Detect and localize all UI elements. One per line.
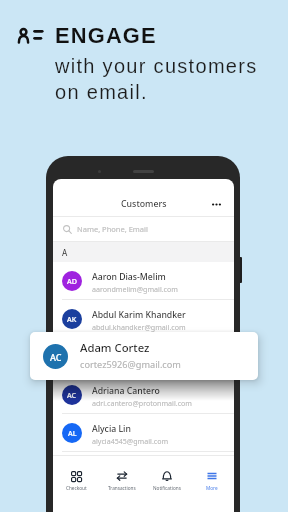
staticText: Notifications (153, 485, 181, 491)
button[interactable]: Notifications (144, 456, 189, 512)
button[interactable]: Name, Phone, Email (53, 217, 234, 241)
staticText: AC (50, 351, 62, 363)
staticText: cortez5926@gmail.com (80, 358, 181, 371)
staticText: Alycia Lin (92, 423, 131, 435)
staticText: Adriana Cantero (92, 385, 160, 397)
staticText: AB (67, 352, 77, 362)
staticText: adri.cantero@protonmail.com (92, 398, 192, 408)
staticText: Adam Baker (92, 347, 143, 359)
staticText: AC (67, 390, 77, 400)
button[interactable]: More options (205, 192, 227, 216)
button[interactable]: AC (30, 332, 258, 380)
button[interactable]: AK (53, 300, 234, 337)
staticText: Checkout (66, 485, 87, 491)
staticText: AD (67, 276, 77, 286)
staticText: aarondmelim@gmail.com (92, 284, 178, 294)
button[interactable]: AB (53, 338, 234, 375)
staticText: Transactions (108, 485, 136, 491)
button[interactable]: Transactions (99, 456, 144, 512)
staticText: Abdul Karim Khandker (92, 309, 186, 321)
staticText: Aaron Dias-Melim (92, 271, 166, 283)
staticText: abdul.khandker@gmail.com (92, 322, 186, 332)
staticText: with your customers on email. (55, 55, 258, 103)
staticText: Name, Phone, Email (77, 224, 148, 234)
staticText: A (62, 247, 68, 258)
button[interactable]: AC (53, 376, 234, 413)
button[interactable]: More (189, 456, 234, 512)
button[interactable]: AD (53, 262, 234, 299)
staticText: Adam Cortez (80, 340, 150, 355)
staticText: AL (68, 428, 77, 438)
staticText: AK (67, 314, 77, 324)
staticText: alycia4545@gmail.com (92, 436, 169, 446)
staticText: More (206, 485, 218, 491)
button[interactable]: AL (53, 414, 234, 451)
staticText: Customers (121, 198, 167, 210)
button[interactable]: Checkout (53, 456, 99, 512)
staticText: ENGAGE (55, 23, 157, 47)
staticText: adam.baker@gmail.com (92, 360, 174, 370)
